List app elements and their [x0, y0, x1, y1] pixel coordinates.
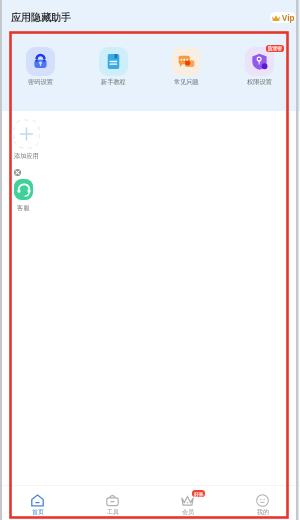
- staticText: 我的: [257, 508, 269, 516]
- button[interactable]: 首页: [0, 494, 75, 516]
- staticText: Vip: [282, 12, 295, 23]
- staticText: 添加应用: [14, 152, 39, 160]
- staticText: 工具: [107, 508, 119, 516]
- button[interactable]: 工具: [75, 494, 150, 516]
- staticText: 客服: [17, 204, 30, 212]
- other: 删除: [14, 169, 21, 176]
- button[interactable]: 新手教程: [89, 47, 137, 86]
- staticText: 首页: [32, 508, 44, 516]
- button[interactable]: 我的: [225, 494, 300, 516]
- button[interactable]: 防泄密: [235, 47, 283, 86]
- staticText: 常见问题: [174, 78, 199, 86]
- button[interactable]: VIP: [270, 12, 296, 23]
- staticText: 新手教程: [101, 78, 126, 86]
- button[interactable]: 好券: [150, 494, 225, 516]
- button[interactable]: 添加应用: [6, 120, 46, 160]
- button[interactable]: 密码设置: [16, 47, 64, 86]
- staticText: 防泄密: [268, 46, 282, 52]
- staticText: 好券: [194, 491, 204, 497]
- staticText: 会员: [182, 508, 194, 516]
- button[interactable]: 常见问题: [162, 47, 210, 86]
- staticText: 密码设置: [28, 78, 53, 86]
- staticText: 应用隐藏助手: [11, 11, 71, 24]
- staticText: 权限设置: [247, 78, 272, 86]
- button[interactable]: 删除: [3, 179, 43, 212]
